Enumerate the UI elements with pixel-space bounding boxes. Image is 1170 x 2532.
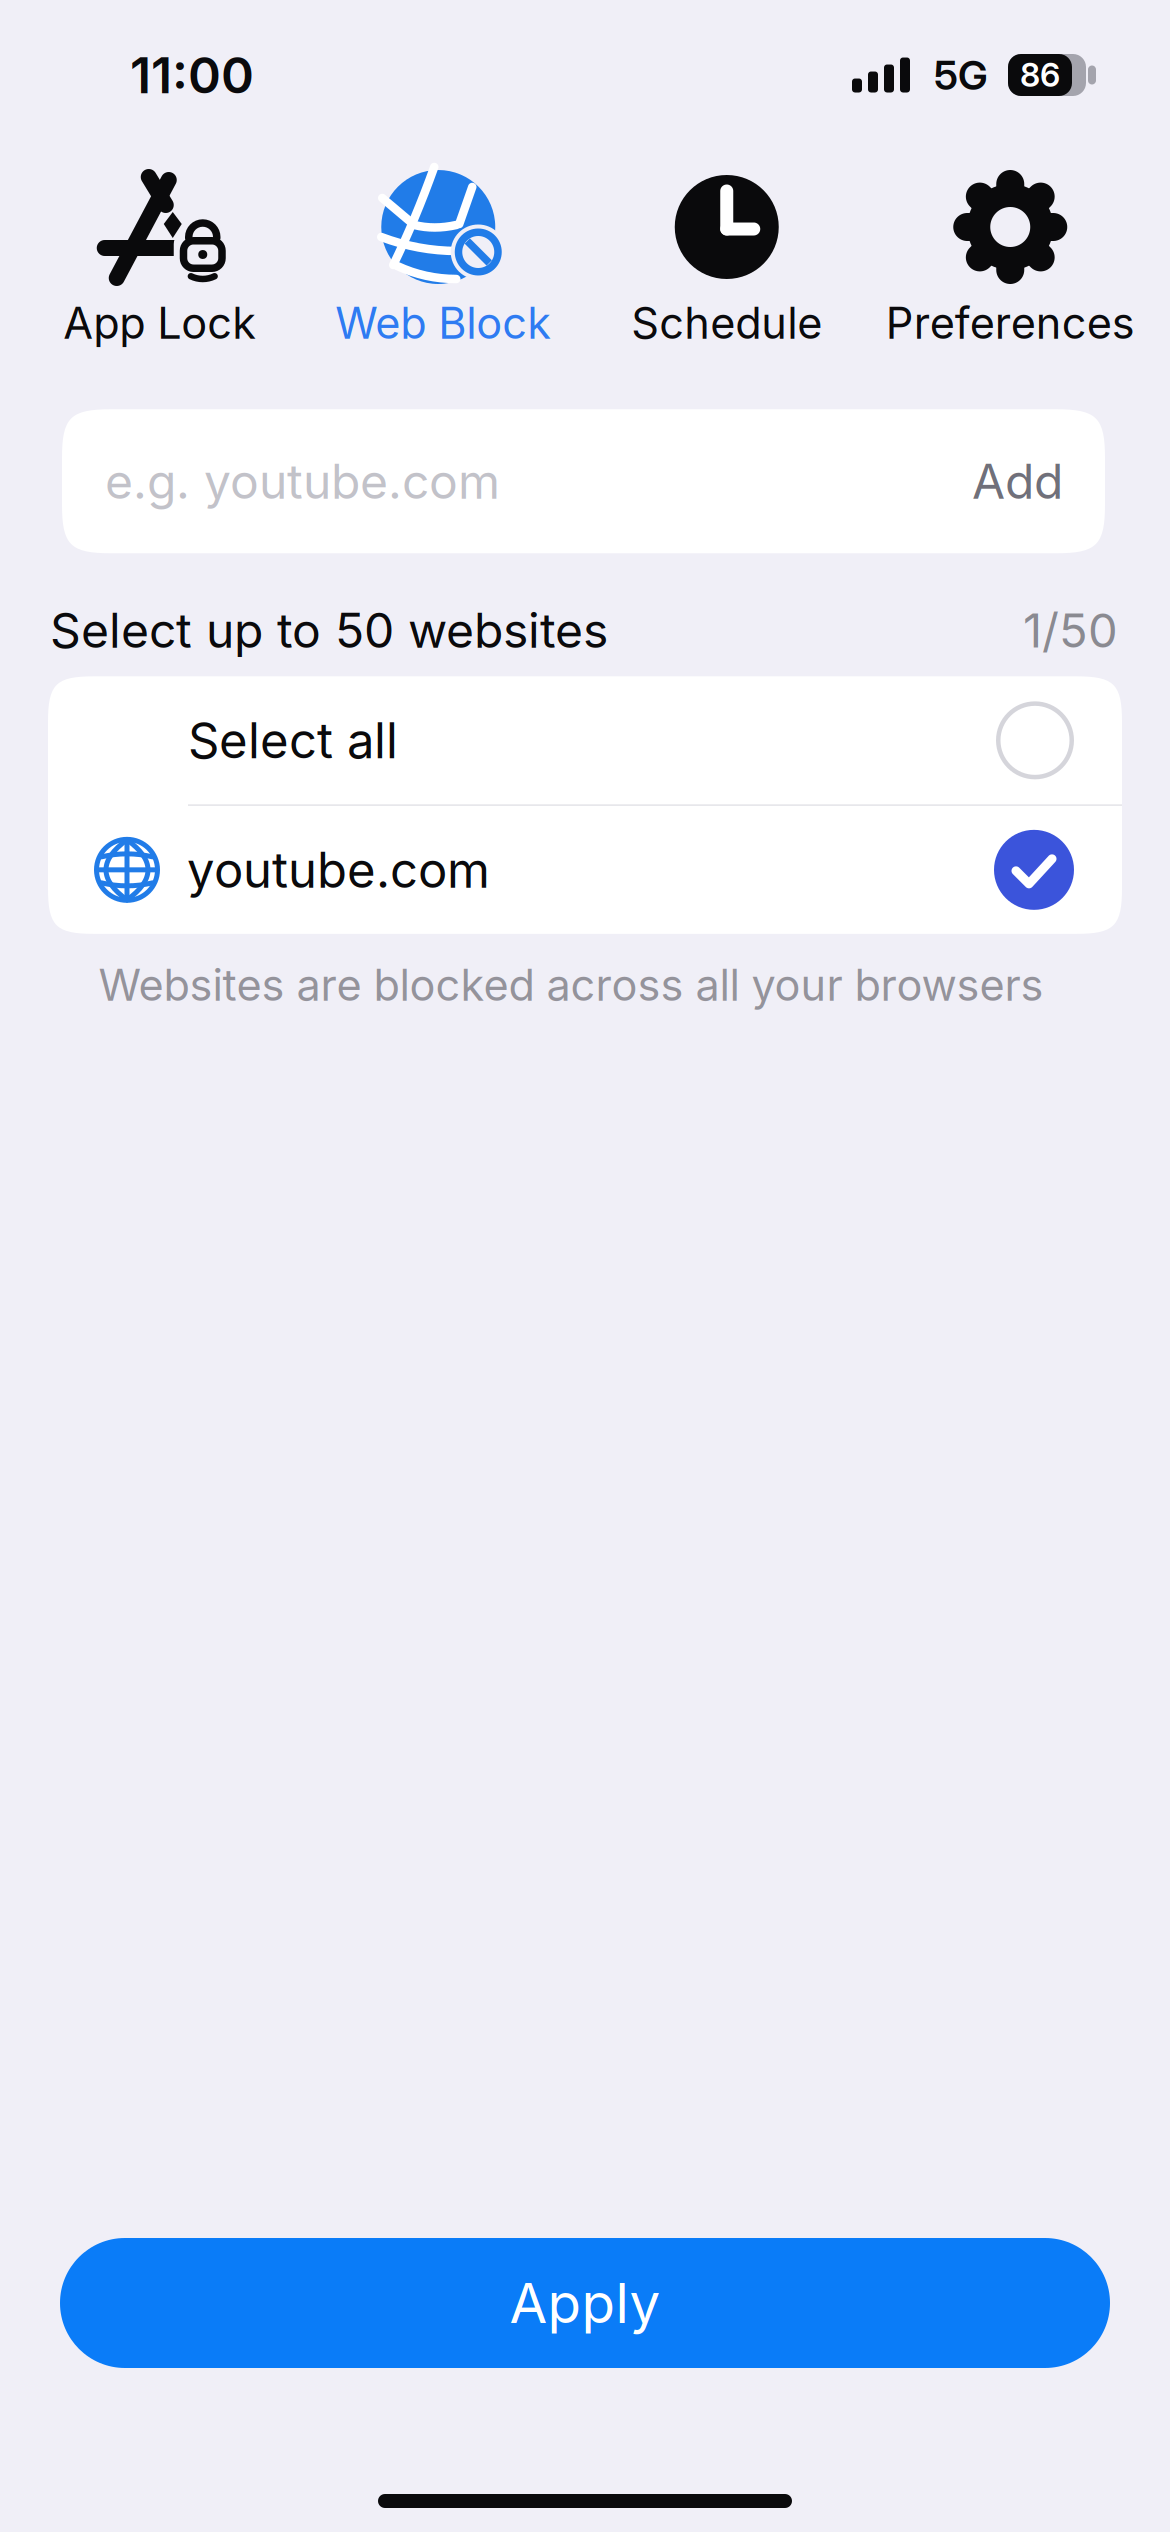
staticText: Apply <box>509 2270 660 2336</box>
staticText: Select all <box>188 711 398 770</box>
staticText: Schedule <box>631 297 822 349</box>
staticText: e.g. youtube.com <box>105 452 500 510</box>
button[interactable]: App Lock <box>18 167 301 349</box>
staticText: Add <box>972 452 1063 510</box>
staticText: Preferences <box>886 297 1135 349</box>
staticText: Web Block <box>335 297 551 349</box>
staticText: Select up to 50 websites <box>50 601 608 659</box>
button[interactable]: youtube.com <box>48 806 1122 934</box>
button[interactable]: Preferences <box>868 167 1152 349</box>
button[interactable]: Select all <box>48 676 1122 804</box>
button[interactable]: Add <box>972 452 1063 510</box>
staticText: youtube.com <box>187 840 490 899</box>
button[interactable]: Apply <box>60 2238 1110 2368</box>
staticText: 1/50 <box>1023 602 1118 659</box>
button[interactable]: Schedule <box>585 167 868 349</box>
staticText: Websites are blocked across all your bro… <box>98 959 1043 1011</box>
button[interactable]: Web Block <box>301 167 585 349</box>
staticText: 5G <box>934 51 988 99</box>
staticText: 86 <box>1020 55 1060 95</box>
staticText: 11:00 <box>130 45 254 105</box>
staticText: App Lock <box>63 297 256 349</box>
